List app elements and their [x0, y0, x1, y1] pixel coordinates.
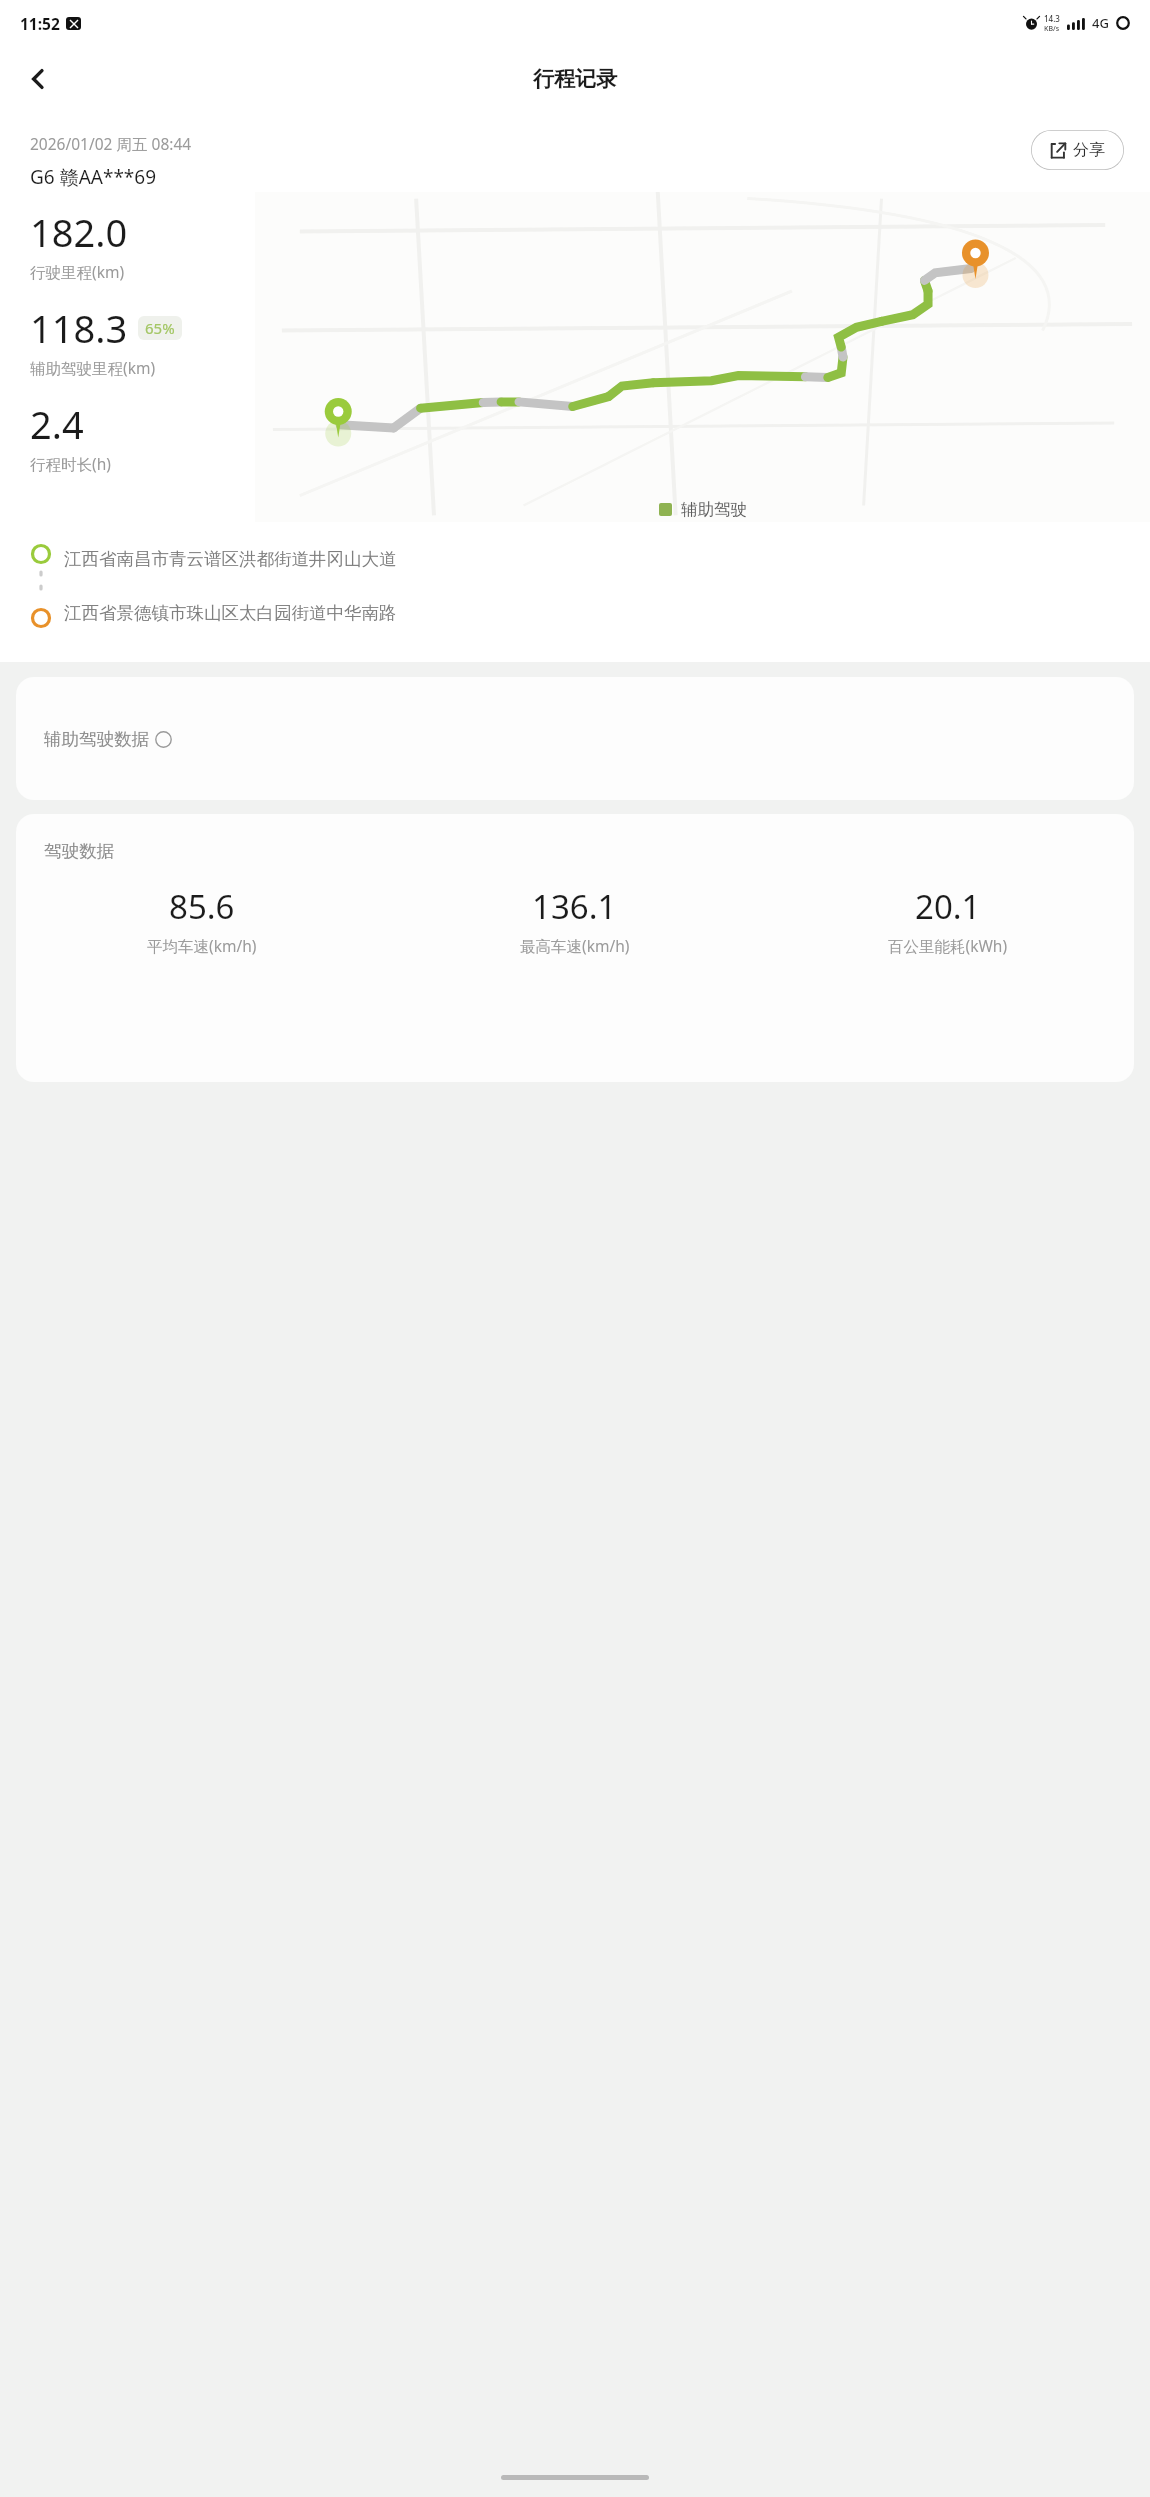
- staticText: 平均车速(km/h): [147, 935, 257, 956]
- staticText: 分享: [1073, 140, 1105, 160]
- staticText: 辅助驾驶数据: [44, 728, 149, 750]
- staticText: 14.3: [1044, 13, 1060, 24]
- staticText: G6 赣AA***69: [30, 164, 157, 190]
- staticText: 85.6: [169, 884, 235, 929]
- staticText: 行程时长(h): [30, 453, 111, 474]
- staticText: 11:52: [20, 13, 60, 34]
- staticText: 20.1: [915, 884, 981, 929]
- staticText: 最高车速(km/h): [520, 935, 630, 956]
- staticText: 江西省景德镇市珠山区太白园街道中华南路: [64, 602, 397, 624]
- staticText: 2.4: [30, 398, 84, 450]
- button[interactable]: 驾驶数据: [16, 814, 1134, 1082]
- staticText: 驾驶数据: [44, 840, 114, 862]
- staticText: 182.0: [30, 206, 128, 258]
- staticText: KB/s: [1044, 24, 1060, 34]
- staticText: 4G: [1092, 14, 1109, 32]
- staticText: 辅助驾驶: [681, 499, 747, 520]
- staticText: 行驶里程(km): [30, 261, 125, 282]
- button[interactable]: 分享: [1031, 130, 1124, 170]
- staticText: 行程记录: [533, 66, 617, 92]
- staticText: 118.3: [30, 302, 128, 354]
- staticText: 辅助驾驶里程(km): [30, 357, 156, 378]
- button[interactable]: Back: [10, 51, 66, 107]
- staticText: 江西省南昌市青云谱区洪都街道井冈山大道: [64, 548, 397, 570]
- button[interactable]: 辅助驾驶数据: [16, 677, 1134, 800]
- staticText: 136.1: [532, 884, 617, 929]
- staticText: 65%: [145, 318, 175, 338]
- staticText: 2026/01/02 周五 08:44: [30, 133, 192, 154]
- staticText: 百公里能耗(kWh): [888, 935, 1008, 956]
